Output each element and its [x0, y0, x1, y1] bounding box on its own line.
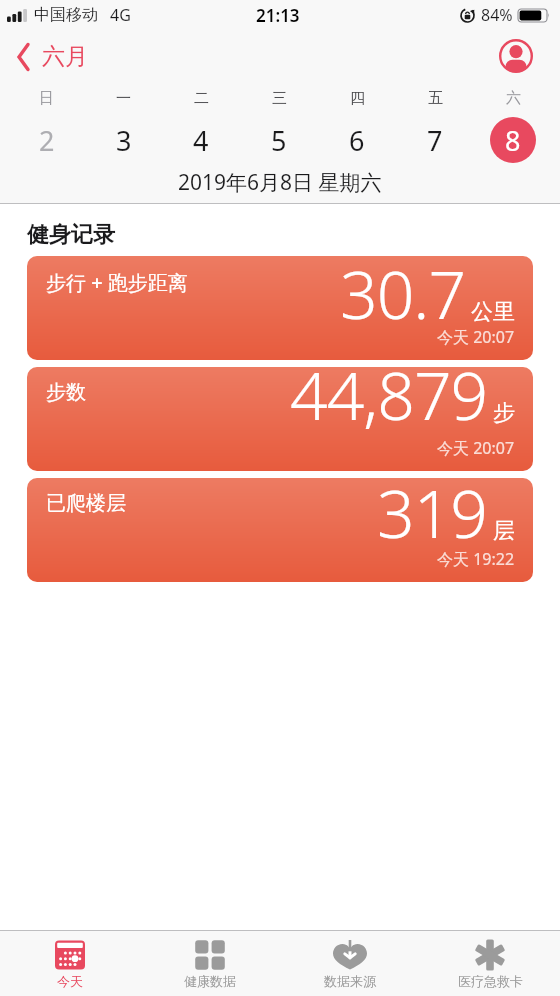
staticText: 步行 + 跑步距离	[46, 269, 188, 296]
staticText: 四	[350, 89, 365, 108]
staticText: 一	[116, 89, 131, 108]
button[interactable]: 3	[85, 114, 162, 166]
staticText: 5	[271, 122, 287, 159]
staticText: 公里	[471, 298, 515, 326]
button[interactable]: 5	[240, 114, 318, 166]
staticText: 层	[493, 517, 515, 545]
staticText: 319	[377, 478, 488, 557]
staticText: 步数	[46, 380, 86, 405]
staticText: 2019年6月8日 星期六	[178, 168, 382, 197]
staticText: 三	[272, 89, 287, 108]
staticText: 五	[428, 89, 443, 108]
staticText: 今天 20:07	[437, 437, 515, 459]
button[interactable]: 已爬楼层	[27, 478, 533, 582]
staticText: 已爬楼层	[46, 491, 126, 516]
staticText: 健身记录	[27, 221, 115, 249]
button[interactable]: 8	[474, 114, 552, 166]
staticText: 今天	[57, 973, 83, 989]
staticText: 健康数据	[184, 973, 236, 989]
staticText: 84%	[481, 4, 513, 26]
button[interactable]: 健康数据	[140, 931, 280, 996]
staticText: 步	[493, 399, 515, 427]
staticText: 数据来源	[324, 973, 376, 989]
staticText: 44,879	[290, 367, 488, 439]
button[interactable]: 6	[318, 114, 396, 166]
button[interactable]: 医疗急救卡	[420, 931, 560, 996]
staticText: 7	[427, 122, 443, 159]
staticText: 日	[39, 89, 54, 108]
staticText: 4	[193, 122, 209, 159]
button[interactable]: 步数	[27, 367, 533, 471]
staticText: 今天 20:07	[437, 326, 515, 348]
staticText: 中国移动	[34, 5, 98, 25]
button[interactable]: 7	[396, 114, 474, 166]
button[interactable]: 4	[162, 114, 240, 166]
staticText: 六	[506, 89, 521, 108]
staticText: 六月	[42, 42, 88, 71]
staticText: 3	[116, 122, 132, 159]
staticText: 今天 19:22	[437, 548, 515, 570]
staticText: 二	[194, 89, 209, 108]
staticText: 8	[505, 122, 521, 159]
staticText: 医疗急救卡	[458, 973, 523, 989]
staticText: 30.7	[340, 256, 466, 338]
staticText: 4G	[110, 4, 131, 26]
button[interactable]	[499, 39, 533, 73]
button[interactable]: 数据来源	[280, 931, 420, 996]
button[interactable]: 六月	[16, 42, 88, 71]
staticText: 21:13	[256, 4, 300, 27]
button[interactable]: 今天	[0, 931, 140, 996]
button[interactable]: 步行 + 跑步距离	[27, 256, 533, 360]
staticText: 6	[349, 122, 365, 159]
button[interactable]: 2	[8, 114, 85, 166]
staticText: 2	[39, 122, 55, 159]
